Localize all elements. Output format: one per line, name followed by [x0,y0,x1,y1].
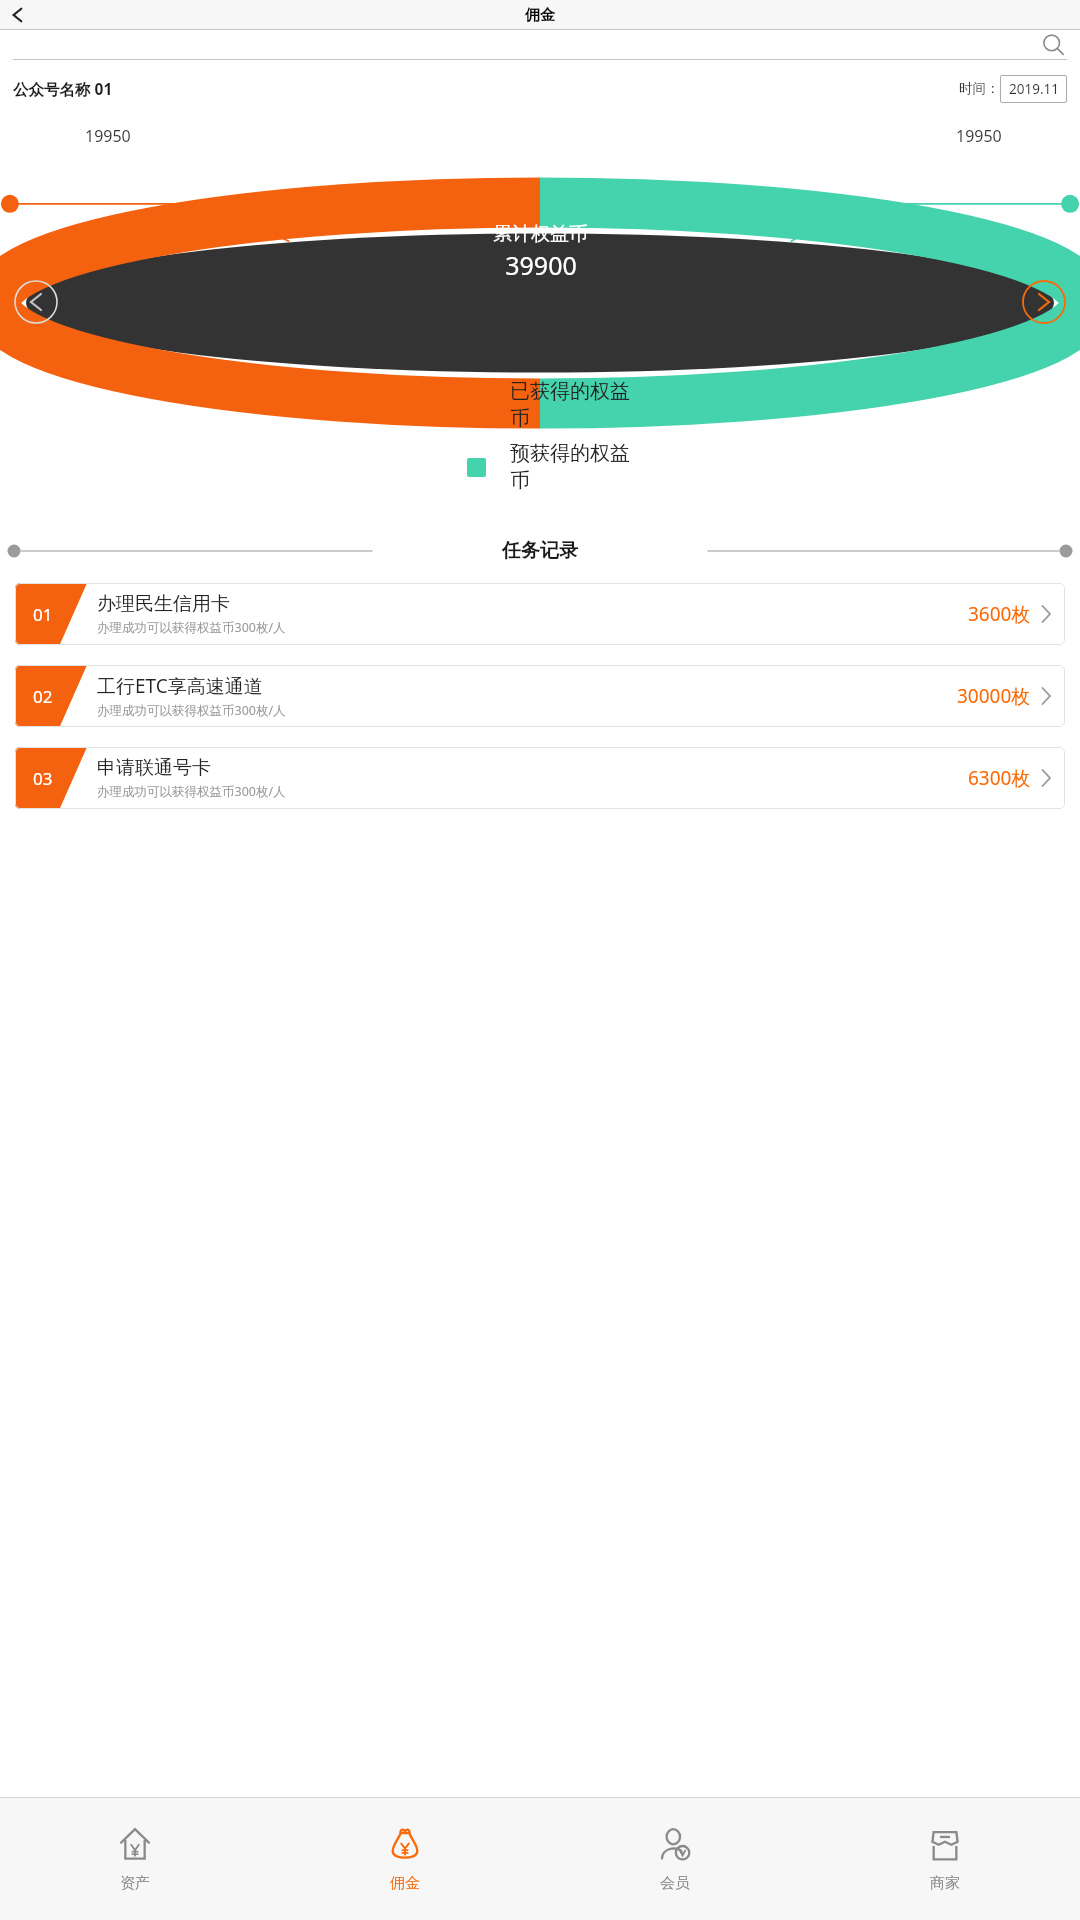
button[interactable]: 资产 [0,1798,270,1920]
staticText: 任务记录 [502,539,578,563]
staticText: 03 [33,767,53,790]
button[interactable]: 02 [15,665,1065,727]
staticText: 6300枚 [968,765,1031,791]
button[interactable]: Back [4,3,28,27]
button[interactable]: 01 [15,583,1065,645]
staticText: 申请联通号卡 [97,756,211,780]
button[interactable]: Previous [14,280,58,324]
staticText: 办理成功可以获得权益币300枚/人 [97,619,286,636]
staticText: 办理民生信用卡 [97,592,230,616]
staticText: 预获得的权益币 [510,441,640,493]
staticText: 商家 [930,1874,960,1893]
staticText: 办理成功可以获得权益币300枚/人 [97,702,286,719]
staticText: 3600枚 [968,601,1031,627]
button[interactable]: 03 [15,747,1065,809]
staticText: 累计权益币 [493,222,588,246]
staticText: 佣金 [390,1874,420,1893]
staticText: 会员 [660,1874,690,1893]
button[interactable]: 佣金 [270,1798,540,1920]
staticText: 2019.11 [1009,80,1059,98]
staticText: 工行ETC享高速通道 [97,673,263,699]
staticText: 19950 [85,125,131,147]
button[interactable]: 2019.11 [1000,75,1067,103]
staticText: 已获得的权益币 [510,379,640,431]
staticText: 资产 [120,1874,150,1893]
staticText: 02 [33,685,53,708]
button[interactable]: 会员 [540,1798,810,1920]
button[interactable]: Next [1022,280,1066,324]
staticText: 佣金 [525,6,555,25]
staticText: 时间： [959,80,1000,97]
staticText: 39900 [505,248,577,282]
staticText: 01 [33,603,53,626]
button[interactable]: Search [1040,32,1066,58]
staticText: 公众号名称 01 [13,78,113,99]
staticText: 19950 [956,125,1002,147]
button[interactable]: 商家 [810,1798,1080,1920]
staticText: 30000枚 [957,683,1031,709]
staticText: 办理成功可以获得权益币300枚/人 [97,783,286,800]
